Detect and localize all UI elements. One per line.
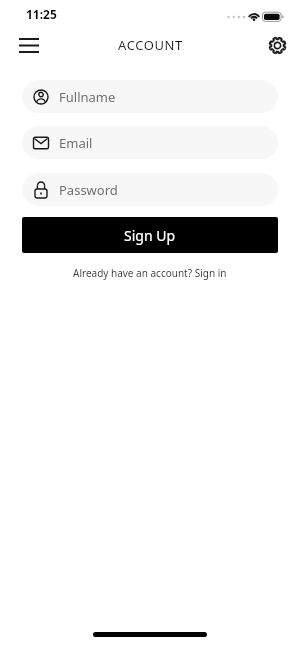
staticText: Sign Up [124, 226, 176, 245]
staticText: 11:25 [26, 6, 57, 22]
staticText: ACCOUNT [118, 36, 183, 54]
button[interactable] [13, 29, 45, 61]
button[interactable]: Email [22, 126, 278, 159]
button[interactable]: Sign Up [22, 217, 278, 253]
staticText: Password [59, 181, 118, 199]
button[interactable] [261, 29, 293, 61]
staticText: Fullname [59, 88, 116, 106]
button[interactable]: Fullname [22, 80, 278, 113]
button[interactable]: Already have an account? Sign in [73, 266, 227, 280]
staticText: Email [59, 134, 93, 152]
button[interactable]: Password [22, 173, 278, 206]
